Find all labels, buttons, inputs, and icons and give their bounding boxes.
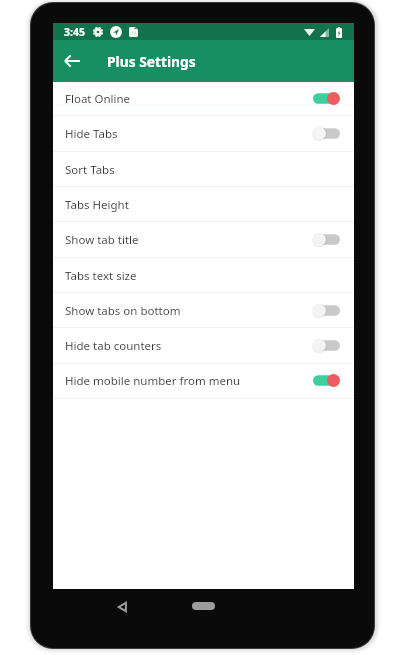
- staticText: Float Online: [65, 91, 131, 107]
- button[interactable]: Float Online: [53, 81, 354, 116]
- staticText: Tabs Height: [65, 197, 129, 213]
- staticText: 3:45: [64, 25, 85, 39]
- button[interactable]: Show tabs on bottom: [53, 293, 354, 328]
- button[interactable]: Hide mobile number from menu: [53, 363, 354, 398]
- staticText: Tabs text size: [65, 268, 137, 284]
- button[interactable]: Tabs text size: [53, 258, 354, 293]
- button[interactable]: On: [313, 92, 340, 105]
- staticText: Hide mobile number from menu: [65, 373, 241, 389]
- button[interactable]: Off: [313, 304, 340, 317]
- button[interactable]: Hide tab counters: [53, 328, 354, 363]
- button[interactable]: Home: [185, 588, 222, 623]
- button[interactable]: Sort Tabs: [53, 152, 354, 187]
- button[interactable]: On: [313, 374, 340, 387]
- staticText: Plus Settings: [107, 52, 196, 71]
- button[interactable]: Hide Tabs: [53, 116, 354, 151]
- staticText: Show tabs on bottom: [65, 303, 181, 319]
- staticText: Show tab title: [65, 232, 139, 248]
- staticText: Hide tab counters: [65, 338, 162, 354]
- button[interactable]: Back: [54, 43, 90, 79]
- button[interactable]: Off: [313, 233, 340, 246]
- button[interactable]: Show tab title: [53, 222, 354, 257]
- button[interactable]: Off: [313, 127, 340, 140]
- button[interactable]: Tabs Height: [53, 187, 354, 222]
- button[interactable]: Off: [313, 339, 340, 352]
- staticText: Sort Tabs: [65, 162, 115, 178]
- staticText: Hide Tabs: [65, 126, 118, 142]
- button[interactable]: Back: [103, 588, 139, 623]
